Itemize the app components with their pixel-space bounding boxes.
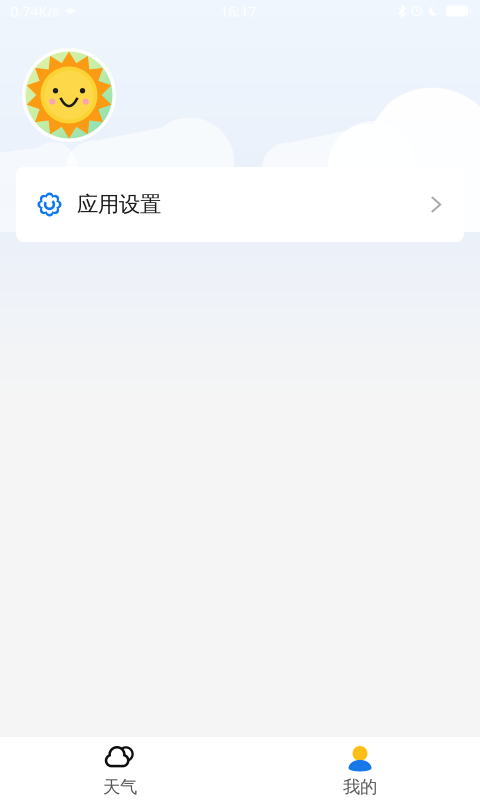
staticText: 我的: [343, 776, 377, 798]
staticText: 0.74K/s: [10, 1, 59, 21]
button[interactable]: 我的: [240, 745, 480, 798]
button[interactable]: 天气: [0, 745, 240, 798]
staticText: 16:17: [220, 1, 256, 21]
staticText: 天气: [103, 776, 137, 798]
button[interactable]: 应用设置: [16, 167, 464, 242]
staticText: 应用设置: [77, 191, 161, 218]
